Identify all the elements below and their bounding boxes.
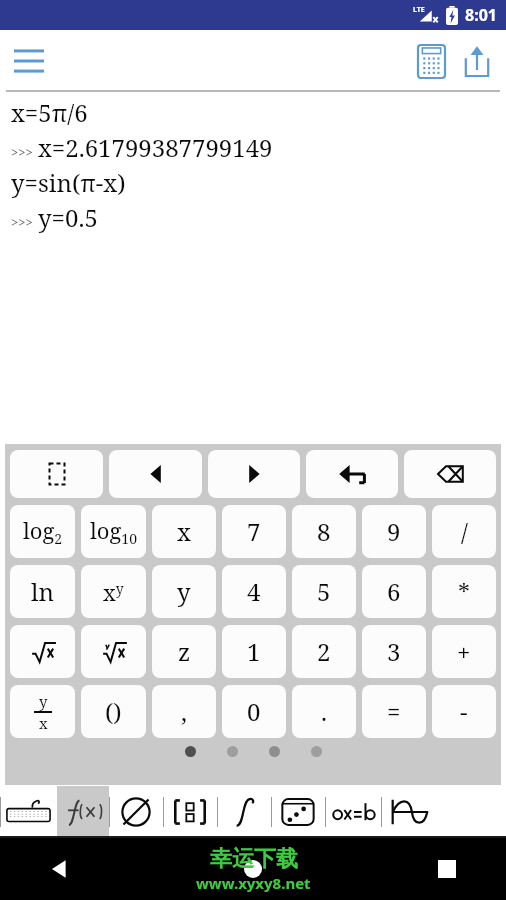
button[interactable]: 2 xyxy=(292,625,356,678)
button[interactable]: / xyxy=(432,505,496,558)
button[interactable]: Left xyxy=(109,450,202,498)
staticText: x=2.61799387799149 xyxy=(38,131,273,164)
button[interactable]: Equation xyxy=(325,786,381,838)
button[interactable]: 0 xyxy=(222,685,286,738)
button[interactable]: . xyxy=(292,685,356,738)
staticText: 2 xyxy=(317,635,331,668)
staticText: 8:01 xyxy=(465,4,497,26)
button[interactable]: = xyxy=(362,685,426,738)
button[interactable]: Graph xyxy=(381,786,437,838)
staticText: www.xyxy8.net xyxy=(196,873,311,893)
button[interactable]: () xyxy=(81,685,146,738)
button[interactable]: Placeholder xyxy=(10,450,103,498)
staticText: y xyxy=(177,575,191,608)
button[interactable]: x xyxy=(152,505,216,558)
staticText: y xyxy=(39,691,48,711)
button[interactable]: xy xyxy=(81,565,146,618)
staticText: = xyxy=(387,695,401,728)
button[interactable] xyxy=(10,625,75,678)
button[interactable]: Empty set xyxy=(109,786,163,838)
button[interactable]: Probability xyxy=(271,786,325,838)
button[interactable]: Recents xyxy=(424,846,470,892)
button[interactable]: Menu xyxy=(6,38,52,84)
button[interactable]: 1 xyxy=(222,625,286,678)
staticText: x xyxy=(39,713,48,733)
button[interactable]: ln xyxy=(10,565,75,618)
button[interactable]: - xyxy=(432,685,496,738)
button[interactable]: Backspace xyxy=(404,450,496,498)
staticText: x=5π/6 xyxy=(11,96,88,129)
staticText: () xyxy=(105,695,122,728)
staticText: 1 xyxy=(247,635,261,668)
button[interactable]: log10 xyxy=(81,505,146,558)
button[interactable]: z xyxy=(152,625,216,678)
button[interactable]: , xyxy=(152,685,216,738)
button[interactable]: Calculator xyxy=(408,38,454,84)
button[interactable]: 3 xyxy=(362,625,426,678)
button[interactable] xyxy=(81,625,146,678)
button[interactable]: Matrix xyxy=(163,786,217,838)
button[interactable]: Back xyxy=(36,846,82,892)
staticText: 6 xyxy=(387,575,401,608)
staticText: * xyxy=(458,575,470,608)
button[interactable]: 5 xyxy=(292,565,356,618)
staticText: 9 xyxy=(387,515,401,548)
button[interactable]: + xyxy=(432,625,496,678)
staticText: y=sin(π-x) xyxy=(11,166,126,199)
staticText: 0 xyxy=(247,695,261,728)
button[interactable]: Integral xyxy=(217,786,271,838)
button[interactable]: 8 xyxy=(292,505,356,558)
staticText: log2 xyxy=(23,515,63,548)
staticText: , xyxy=(181,695,187,728)
button[interactable]: Functions xyxy=(57,786,109,838)
staticText: y=0.5 xyxy=(38,201,98,234)
staticText: 5 xyxy=(317,575,331,608)
button[interactable]: log2 xyxy=(10,505,75,558)
staticText: LTE xyxy=(413,5,425,15)
button[interactable]: Right xyxy=(208,450,300,498)
staticText: . xyxy=(321,695,327,728)
button[interactable]: 4 xyxy=(222,565,286,618)
button[interactable]: Home xyxy=(230,846,276,892)
staticText: >>> xyxy=(11,213,33,231)
button[interactable]: Enter xyxy=(306,450,398,498)
staticText: >>> xyxy=(11,143,33,161)
staticText: log10 xyxy=(90,515,138,548)
button[interactable]: * xyxy=(432,565,496,618)
staticText: z xyxy=(178,635,191,668)
button[interactable]: 7 xyxy=(222,505,286,558)
staticText: x xyxy=(177,515,191,548)
button[interactable]: Share xyxy=(454,38,500,84)
button[interactable]: 9 xyxy=(362,505,426,558)
staticText: - xyxy=(460,695,468,728)
button[interactable]: 6 xyxy=(362,565,426,618)
staticText: 3 xyxy=(387,635,401,668)
button[interactable]: y xyxy=(10,685,75,738)
button[interactable]: Keyboard xyxy=(0,786,57,838)
button[interactable]: y xyxy=(152,565,216,618)
staticText: 4 xyxy=(247,575,261,608)
staticText: 幸运下载 xyxy=(210,845,298,873)
staticText: / xyxy=(461,515,468,548)
staticText: + xyxy=(457,635,471,668)
staticText: xy xyxy=(103,577,124,607)
staticText: 7 xyxy=(247,515,261,548)
staticText: ln xyxy=(31,575,54,608)
staticText: 8 xyxy=(317,515,331,548)
